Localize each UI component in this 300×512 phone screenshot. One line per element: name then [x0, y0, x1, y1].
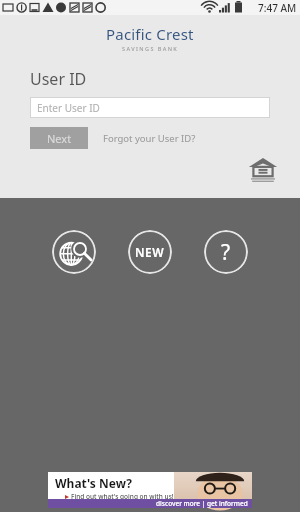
staticText: NEW — [135, 244, 165, 260]
staticText: 7:47 AM — [258, 1, 297, 15]
button[interactable]: Next — [30, 127, 88, 149]
button[interactable]: Help — [204, 230, 248, 274]
staticText: SAVINGS BANK — [122, 45, 179, 52]
staticText: User ID — [30, 68, 87, 90]
staticText: Find out what's going on with us! — [71, 492, 174, 501]
button[interactable]: Search — [52, 230, 96, 274]
staticText: Forgot your User ID? — [103, 132, 196, 145]
staticText: What's New? — [55, 475, 132, 491]
button[interactable]: What is new — [128, 230, 172, 274]
staticText: Next — [47, 131, 72, 146]
staticText: Pacific Crest — [106, 24, 194, 44]
button[interactable]: Advertisement: What's New? — [48, 472, 252, 508]
staticText: ? — [221, 238, 231, 267]
staticText: Enter User ID — [37, 101, 100, 115]
button[interactable]: Forgot your User ID? — [101, 130, 198, 147]
button[interactable]: Enter User ID — [30, 97, 270, 118]
staticText: discover more | get informed — [156, 499, 248, 508]
